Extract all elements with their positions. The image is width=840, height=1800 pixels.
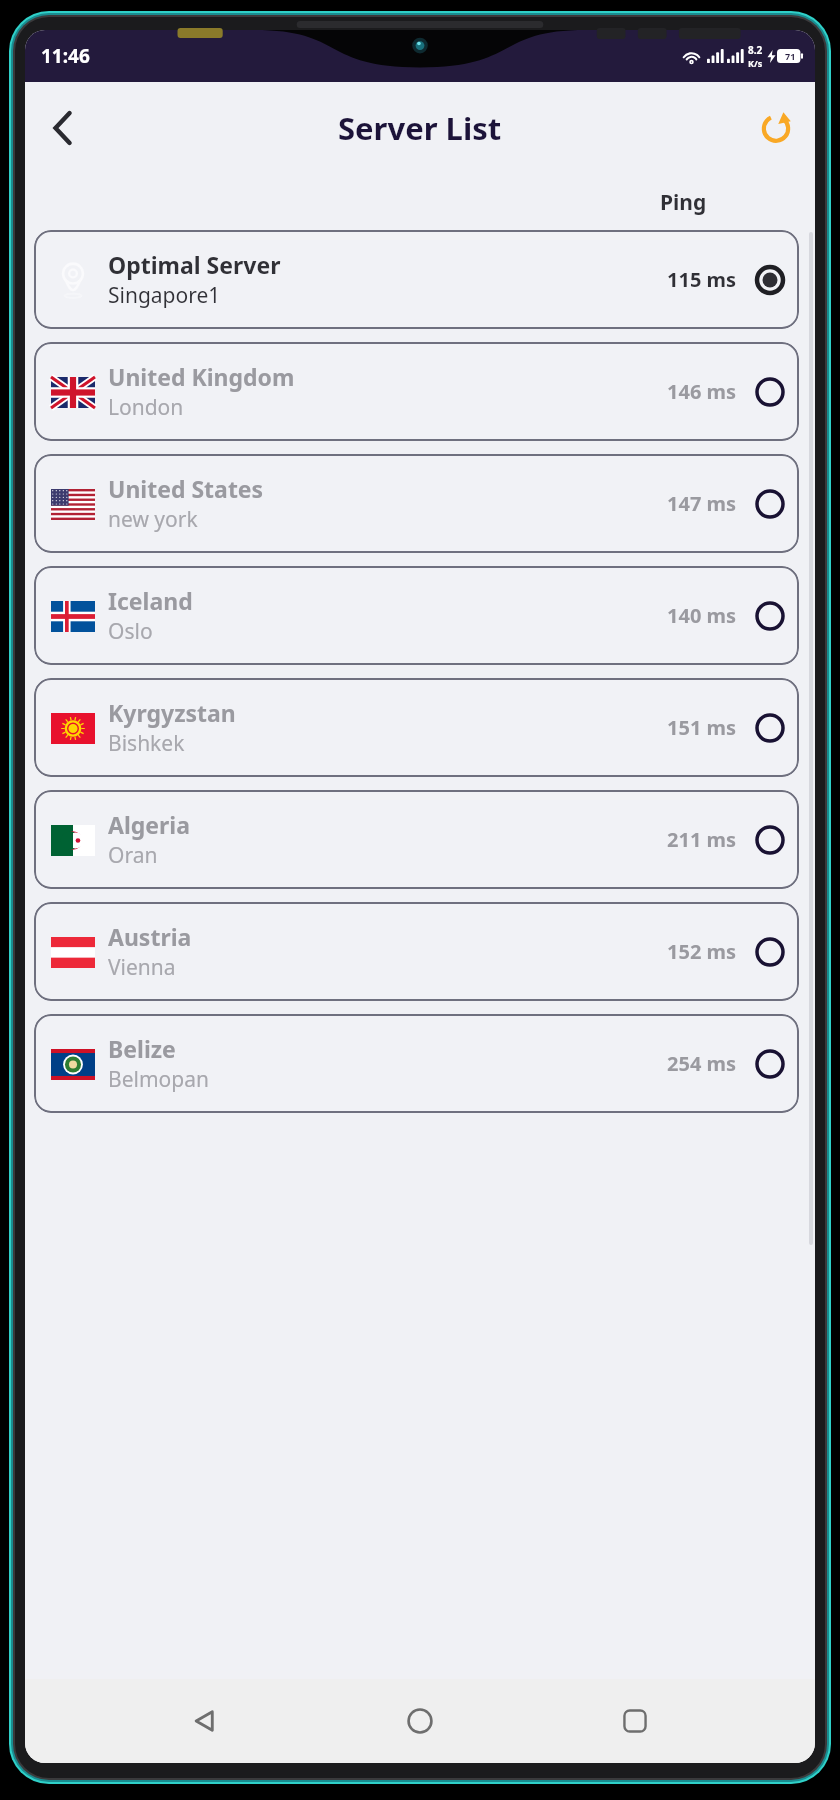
staticText: Server List [338, 107, 502, 149]
button[interactable]: Optimal Server [34, 230, 799, 329]
staticText: 151 ms [667, 714, 737, 741]
staticText: Austria [108, 921, 192, 952]
staticText: Belize [108, 1033, 176, 1064]
button[interactable]: United States [34, 454, 799, 553]
button[interactable]: Select United States [753, 487, 787, 521]
button[interactable]: Back [170, 1686, 240, 1756]
staticText: United Kingdom [108, 361, 295, 392]
staticText: Iceland [108, 585, 193, 616]
button[interactable]: Select Austria [753, 935, 787, 969]
staticText: 71 [785, 50, 796, 62]
button[interactable]: Algeria [34, 790, 799, 889]
staticText: Algeria [108, 809, 190, 840]
staticText: Optimal Server [108, 249, 281, 280]
button[interactable]: Recent apps [600, 1686, 670, 1756]
staticText: United States [108, 473, 264, 504]
staticText: 140 ms [667, 602, 737, 629]
button[interactable]: Select Kyrgyzstan [753, 711, 787, 745]
staticText: Bishkek [108, 729, 185, 758]
staticText: 254 ms [667, 1050, 737, 1077]
staticText: new york [108, 505, 198, 534]
staticText: 211 ms [667, 826, 737, 853]
staticText: Ping [660, 188, 707, 217]
staticText: Belmopan [108, 1065, 209, 1094]
staticText: 146 ms [667, 378, 737, 405]
staticText: Oran [108, 841, 158, 870]
button[interactable]: Kyrgyzstan [34, 678, 799, 777]
button[interactable]: United Kingdom [34, 342, 799, 441]
button[interactable]: Belize [34, 1014, 799, 1113]
button[interactable]: Select United Kingdom [753, 375, 787, 409]
staticText: 147 ms [667, 490, 737, 517]
button[interactable]: Home [385, 1686, 455, 1756]
staticText: K/s [748, 57, 763, 69]
staticText: 11:46 [41, 43, 90, 69]
staticText: 8.2 [748, 43, 763, 57]
staticText: Vienna [108, 953, 176, 982]
staticText: Singapore1 [108, 281, 221, 310]
button[interactable]: Austria [34, 902, 799, 1001]
button[interactable]: Iceland [34, 566, 799, 665]
staticText: 115 ms [667, 266, 737, 293]
button[interactable]: Select Iceland [753, 599, 787, 633]
button[interactable]: Refresh [749, 101, 803, 155]
staticText: Oslo [108, 617, 153, 646]
staticText: 152 ms [667, 938, 737, 965]
button[interactable]: Select Belize [753, 1047, 787, 1081]
staticText: Kyrgyzstan [108, 697, 236, 728]
button[interactable]: Select Optimal Server [753, 263, 787, 297]
staticText: London [108, 393, 184, 422]
button[interactable]: Back [35, 100, 91, 156]
button[interactable]: Select Algeria [753, 823, 787, 857]
